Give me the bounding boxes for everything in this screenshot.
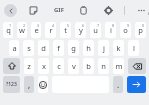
- staticText: 4: [52, 23, 55, 28]
- staticText: c: [57, 61, 61, 71]
- button[interactable]: q: [3, 22, 13, 38]
- button[interactable]: t: [60, 22, 71, 38]
- button[interactable]: z: [24, 58, 34, 74]
- staticText: 6: [82, 23, 85, 28]
- staticText: l: [133, 43, 135, 53]
- button[interactable]: i: [105, 22, 116, 38]
- button[interactable]: Emoji: [38, 76, 48, 93]
- button[interactable]: Stickers: [26, 3, 40, 17]
- staticText: b: [86, 61, 91, 71]
- button[interactable]: Comma: [24, 76, 34, 93]
- button[interactable]: y: [75, 22, 86, 38]
- button[interactable]: Enter: [127, 76, 146, 93]
- button[interactable]: e: [31, 22, 41, 38]
- staticText: p: [138, 25, 143, 35]
- button[interactable]: Clipboard: [76, 3, 90, 17]
- staticText: s: [27, 43, 31, 53]
- staticText: t: [64, 25, 67, 35]
- button[interactable]: c: [53, 58, 64, 74]
- staticText: 0: [142, 23, 145, 28]
- button[interactable]: s: [23, 40, 34, 56]
- staticText: x: [42, 61, 46, 71]
- staticText: w: [19, 25, 25, 35]
- button[interactable]: l: [128, 40, 139, 56]
- button[interactable]: GIF: [51, 0, 66, 20]
- button[interactable]: Settings: [101, 3, 115, 17]
- button[interactable]: p: [135, 22, 146, 38]
- button[interactable]: w: [17, 22, 27, 38]
- staticText: m: [115, 61, 123, 71]
- staticText: u: [93, 25, 98, 35]
- staticText: q: [6, 25, 11, 35]
- button[interactable]: u: [90, 22, 101, 38]
- button[interactable]: k: [113, 40, 124, 56]
- button[interactable]: Period: [113, 76, 123, 93]
- button[interactable]: m: [113, 58, 124, 74]
- staticText: 3: [37, 23, 40, 28]
- staticText: k: [116, 43, 121, 53]
- button[interactable]: r: [45, 22, 56, 38]
- staticText: r: [49, 25, 53, 35]
- button[interactable]: Expand toolbar: [4, 4, 17, 17]
- staticText: z: [27, 61, 31, 71]
- staticText: i: [110, 25, 112, 35]
- staticText: g: [71, 43, 76, 53]
- staticText: 1: [9, 23, 12, 28]
- button[interactable]: n: [98, 58, 109, 74]
- button[interactable]: v: [68, 58, 79, 74]
- staticText: 2: [23, 23, 26, 28]
- staticText: j: [103, 43, 105, 53]
- staticText: h: [86, 43, 91, 53]
- button[interactable]: j: [98, 40, 109, 56]
- button[interactable]: Symbols: [3, 76, 20, 93]
- staticText: a: [12, 43, 17, 53]
- button[interactable]: f: [53, 40, 64, 56]
- button[interactable]: g: [68, 40, 79, 56]
- staticText: n: [101, 61, 106, 71]
- staticText: 9: [127, 23, 130, 28]
- staticText: e: [34, 25, 39, 35]
- staticText: d: [41, 43, 46, 53]
- staticText: .: [117, 79, 120, 90]
- button[interactable]: o: [120, 22, 131, 38]
- button[interactable]: b: [83, 58, 94, 74]
- staticText: 8: [112, 23, 115, 28]
- button[interactable]: More options: [134, 3, 148, 17]
- staticText: 5: [67, 23, 70, 28]
- staticText: y: [79, 25, 83, 35]
- button[interactable]: Backspace: [128, 58, 146, 74]
- button[interactable]: a: [9, 40, 19, 56]
- staticText: f: [57, 43, 60, 53]
- button[interactable]: h: [83, 40, 94, 56]
- button[interactable]: Shift: [3, 58, 20, 74]
- button[interactable]: d: [38, 40, 49, 56]
- button[interactable]: x: [38, 58, 49, 74]
- staticText: o: [123, 25, 128, 35]
- staticText: ,: [28, 79, 31, 90]
- staticText: GIF: [54, 6, 64, 14]
- staticText: v: [72, 61, 76, 71]
- staticText: ?123: [6, 81, 17, 88]
- staticText: 7: [97, 23, 100, 28]
